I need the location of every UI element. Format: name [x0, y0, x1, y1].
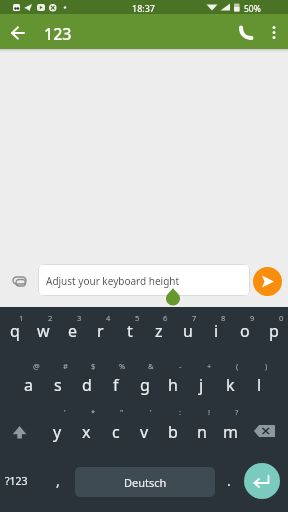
- staticText: :: [179, 407, 182, 417]
- staticText: 7: [192, 313, 197, 323]
- staticText: ?123: [5, 474, 28, 488]
- staticText: k: [226, 374, 235, 396]
- staticText: 2: [48, 313, 53, 323]
- staticText: g: [140, 374, 150, 396]
- button[interactable]: [163, 286, 183, 307]
- staticText: Deutsch: [124, 475, 167, 490]
- button[interactable]: t: [115, 306, 144, 356]
- staticText: !: [208, 407, 211, 417]
- staticText: (: [236, 361, 239, 371]
- staticText: $: [91, 361, 96, 371]
- staticText: y: [53, 421, 62, 443]
- button[interactable]: m: [216, 407, 245, 457]
- button[interactable]: [245, 407, 288, 457]
- staticText: x: [82, 421, 91, 443]
- button[interactable]: u: [173, 306, 202, 356]
- button[interactable]: f: [101, 360, 130, 410]
- staticText: c: [112, 421, 120, 443]
- button[interactable]: p: [259, 306, 288, 356]
- button[interactable]: o: [230, 306, 259, 356]
- staticText: f: [113, 374, 119, 396]
- staticText: 8: [221, 313, 226, 323]
- staticText: %: [119, 361, 126, 371]
- staticText: 4: [106, 313, 111, 323]
- button[interactable]: l: [245, 360, 274, 410]
- button[interactable]: [0, 407, 43, 457]
- staticText: *: [91, 407, 96, 417]
- staticText: m: [223, 421, 238, 443]
- button[interactable]: ,: [46, 455, 70, 505]
- button[interactable]: c: [101, 407, 130, 457]
- staticText: 9: [250, 313, 255, 323]
- staticText: l: [257, 374, 262, 396]
- staticText: Adjust your keyboard height: [46, 274, 180, 288]
- staticText: #: [63, 361, 68, 371]
- button[interactable]: [4, 17, 32, 45]
- staticText: e: [68, 320, 78, 342]
- button[interactable]: [244, 463, 280, 499]
- staticText: ?: [235, 407, 239, 417]
- button[interactable]: a: [14, 360, 43, 410]
- button[interactable]: Deutsch: [75, 467, 215, 497]
- staticText: w: [37, 320, 50, 342]
- button[interactable]: k: [216, 360, 245, 410]
- staticText: q: [10, 320, 20, 342]
- staticText: b: [168, 421, 178, 443]
- button[interactable]: [234, 21, 258, 45]
- staticText: 1: [19, 313, 24, 323]
- button[interactable]: g: [130, 360, 159, 410]
- staticText: ,: [56, 471, 60, 490]
- button[interactable]: h: [158, 360, 187, 410]
- staticText: 3: [77, 313, 82, 323]
- button[interactable]: v: [130, 407, 159, 457]
- staticText: r: [97, 320, 104, 342]
- staticText: +: [207, 361, 212, 371]
- staticText: 6: [163, 313, 168, 323]
- staticText: d: [82, 374, 92, 396]
- button[interactable]: r: [86, 306, 115, 356]
- button[interactable]: e: [58, 306, 87, 356]
- staticText: j: [199, 374, 204, 396]
- staticText: p: [269, 320, 279, 342]
- staticText: n: [197, 421, 207, 443]
- button[interactable]: b: [158, 407, 187, 457]
- staticText: 0: [279, 313, 284, 323]
- staticText: &: [148, 361, 154, 371]
- staticText: 18:37: [132, 2, 156, 14]
- staticText: 50%: [244, 3, 261, 15]
- staticText: o: [240, 320, 250, 342]
- button[interactable]: Adjust your keyboard height: [38, 264, 250, 296]
- staticText: -: [179, 361, 182, 371]
- button[interactable]: y: [43, 407, 72, 457]
- button[interactable]: w: [29, 306, 58, 356]
- staticText: i: [214, 320, 219, 342]
- staticText: 5: [135, 313, 140, 323]
- button[interactable]: q: [0, 306, 29, 356]
- button[interactable]: s: [43, 360, 72, 410]
- staticText: ': [64, 407, 66, 417]
- button[interactable]: j: [187, 360, 216, 410]
- button[interactable]: z: [144, 306, 173, 356]
- button[interactable]: i: [202, 306, 231, 356]
- staticText: h: [168, 374, 178, 396]
- staticText: z: [155, 320, 163, 342]
- button[interactable]: d: [72, 360, 101, 410]
- staticText: v: [140, 421, 149, 443]
- button[interactable]: [8, 270, 32, 290]
- staticText: u: [183, 320, 193, 342]
- button[interactable]: [253, 267, 282, 296]
- staticText: t: [127, 320, 133, 342]
- staticText: @: [33, 361, 40, 371]
- button[interactable]: x: [72, 407, 101, 457]
- staticText: 123: [44, 23, 72, 45]
- button[interactable]: .: [217, 455, 241, 505]
- staticText: ": [120, 407, 124, 417]
- staticText: ': [150, 407, 152, 417]
- staticText: ): [265, 361, 268, 371]
- button[interactable]: [264, 21, 284, 45]
- staticText: a: [24, 374, 33, 396]
- staticText: .: [227, 471, 231, 490]
- button[interactable]: n: [187, 407, 216, 457]
- button[interactable]: ?123: [0, 456, 33, 506]
- staticText: s: [54, 374, 62, 396]
